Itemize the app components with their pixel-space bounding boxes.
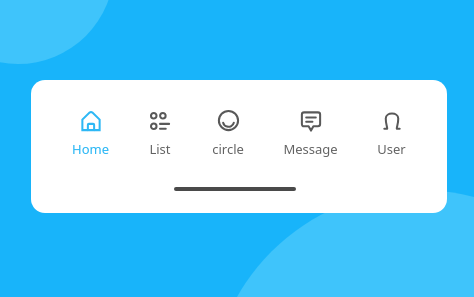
staticText: List [149, 140, 171, 158]
staticText: Message [283, 140, 338, 158]
button[interactable]: Home [66, 105, 115, 162]
button[interactable]: circle [206, 105, 250, 162]
button[interactable]: Message [277, 105, 344, 162]
staticText: User [377, 140, 406, 158]
staticText: circle [212, 140, 244, 158]
staticText: Home [72, 140, 109, 158]
button[interactable]: User [371, 105, 412, 162]
button[interactable]: List [142, 105, 178, 162]
